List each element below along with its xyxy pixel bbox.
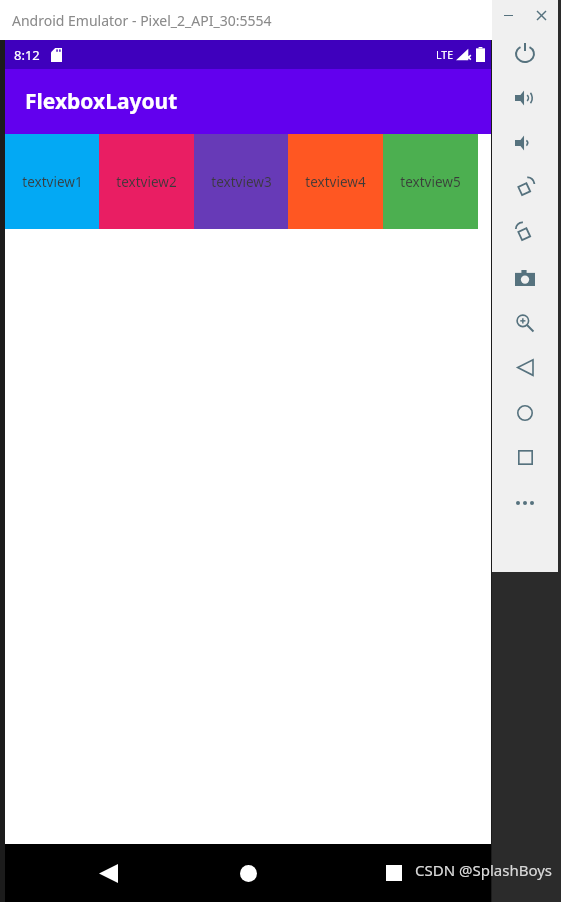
button[interactable]: Back: [492, 345, 558, 390]
button[interactable]: Close: [525, 0, 558, 30]
staticText: FlexboxLayout: [25, 87, 178, 116]
button[interactable]: textview4: [288, 134, 383, 229]
button[interactable]: Minimize: [492, 0, 525, 30]
button[interactable]: Back: [87, 852, 129, 894]
staticText: 8:12: [14, 46, 40, 64]
button[interactable]: textview2: [99, 134, 194, 229]
button[interactable]: Power: [492, 30, 558, 75]
button[interactable]: Rotate right: [492, 210, 558, 255]
button[interactable]: Screenshot: [492, 255, 558, 300]
button[interactable]: Zoom: [492, 300, 558, 345]
button[interactable]: Recents: [373, 852, 415, 894]
staticText: LTE: [436, 48, 453, 62]
button[interactable]: Volume up: [492, 75, 558, 120]
button[interactable]: textview5: [383, 134, 478, 229]
button[interactable]: Home: [227, 852, 269, 894]
button[interactable]: Rotate left: [492, 165, 558, 210]
staticText: textview5: [400, 173, 461, 191]
staticText: textview4: [305, 173, 366, 191]
staticText: textview1: [22, 173, 83, 191]
staticText: CSDN @SplashBoys: [415, 860, 553, 880]
button[interactable]: More: [492, 480, 558, 525]
button[interactable]: textview1: [5, 134, 99, 229]
button[interactable]: Volume down: [492, 120, 558, 165]
button[interactable]: textview3: [194, 134, 288, 229]
staticText: textview2: [116, 173, 177, 191]
staticText: Android Emulator - Pixel_2_API_30:5554: [12, 11, 272, 30]
button[interactable]: Home: [492, 390, 558, 435]
button[interactable]: Overview: [492, 435, 558, 480]
staticText: textview3: [211, 173, 272, 191]
